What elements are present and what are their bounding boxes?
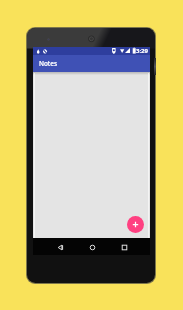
button[interactable]: Home [84,239,100,255]
button[interactable]: Back [52,239,68,255]
staticText: Notes [39,59,58,68]
staticText: 3:29 [136,47,148,55]
button[interactable]: Add note [127,216,144,233]
button[interactable]: Recents [116,239,132,255]
